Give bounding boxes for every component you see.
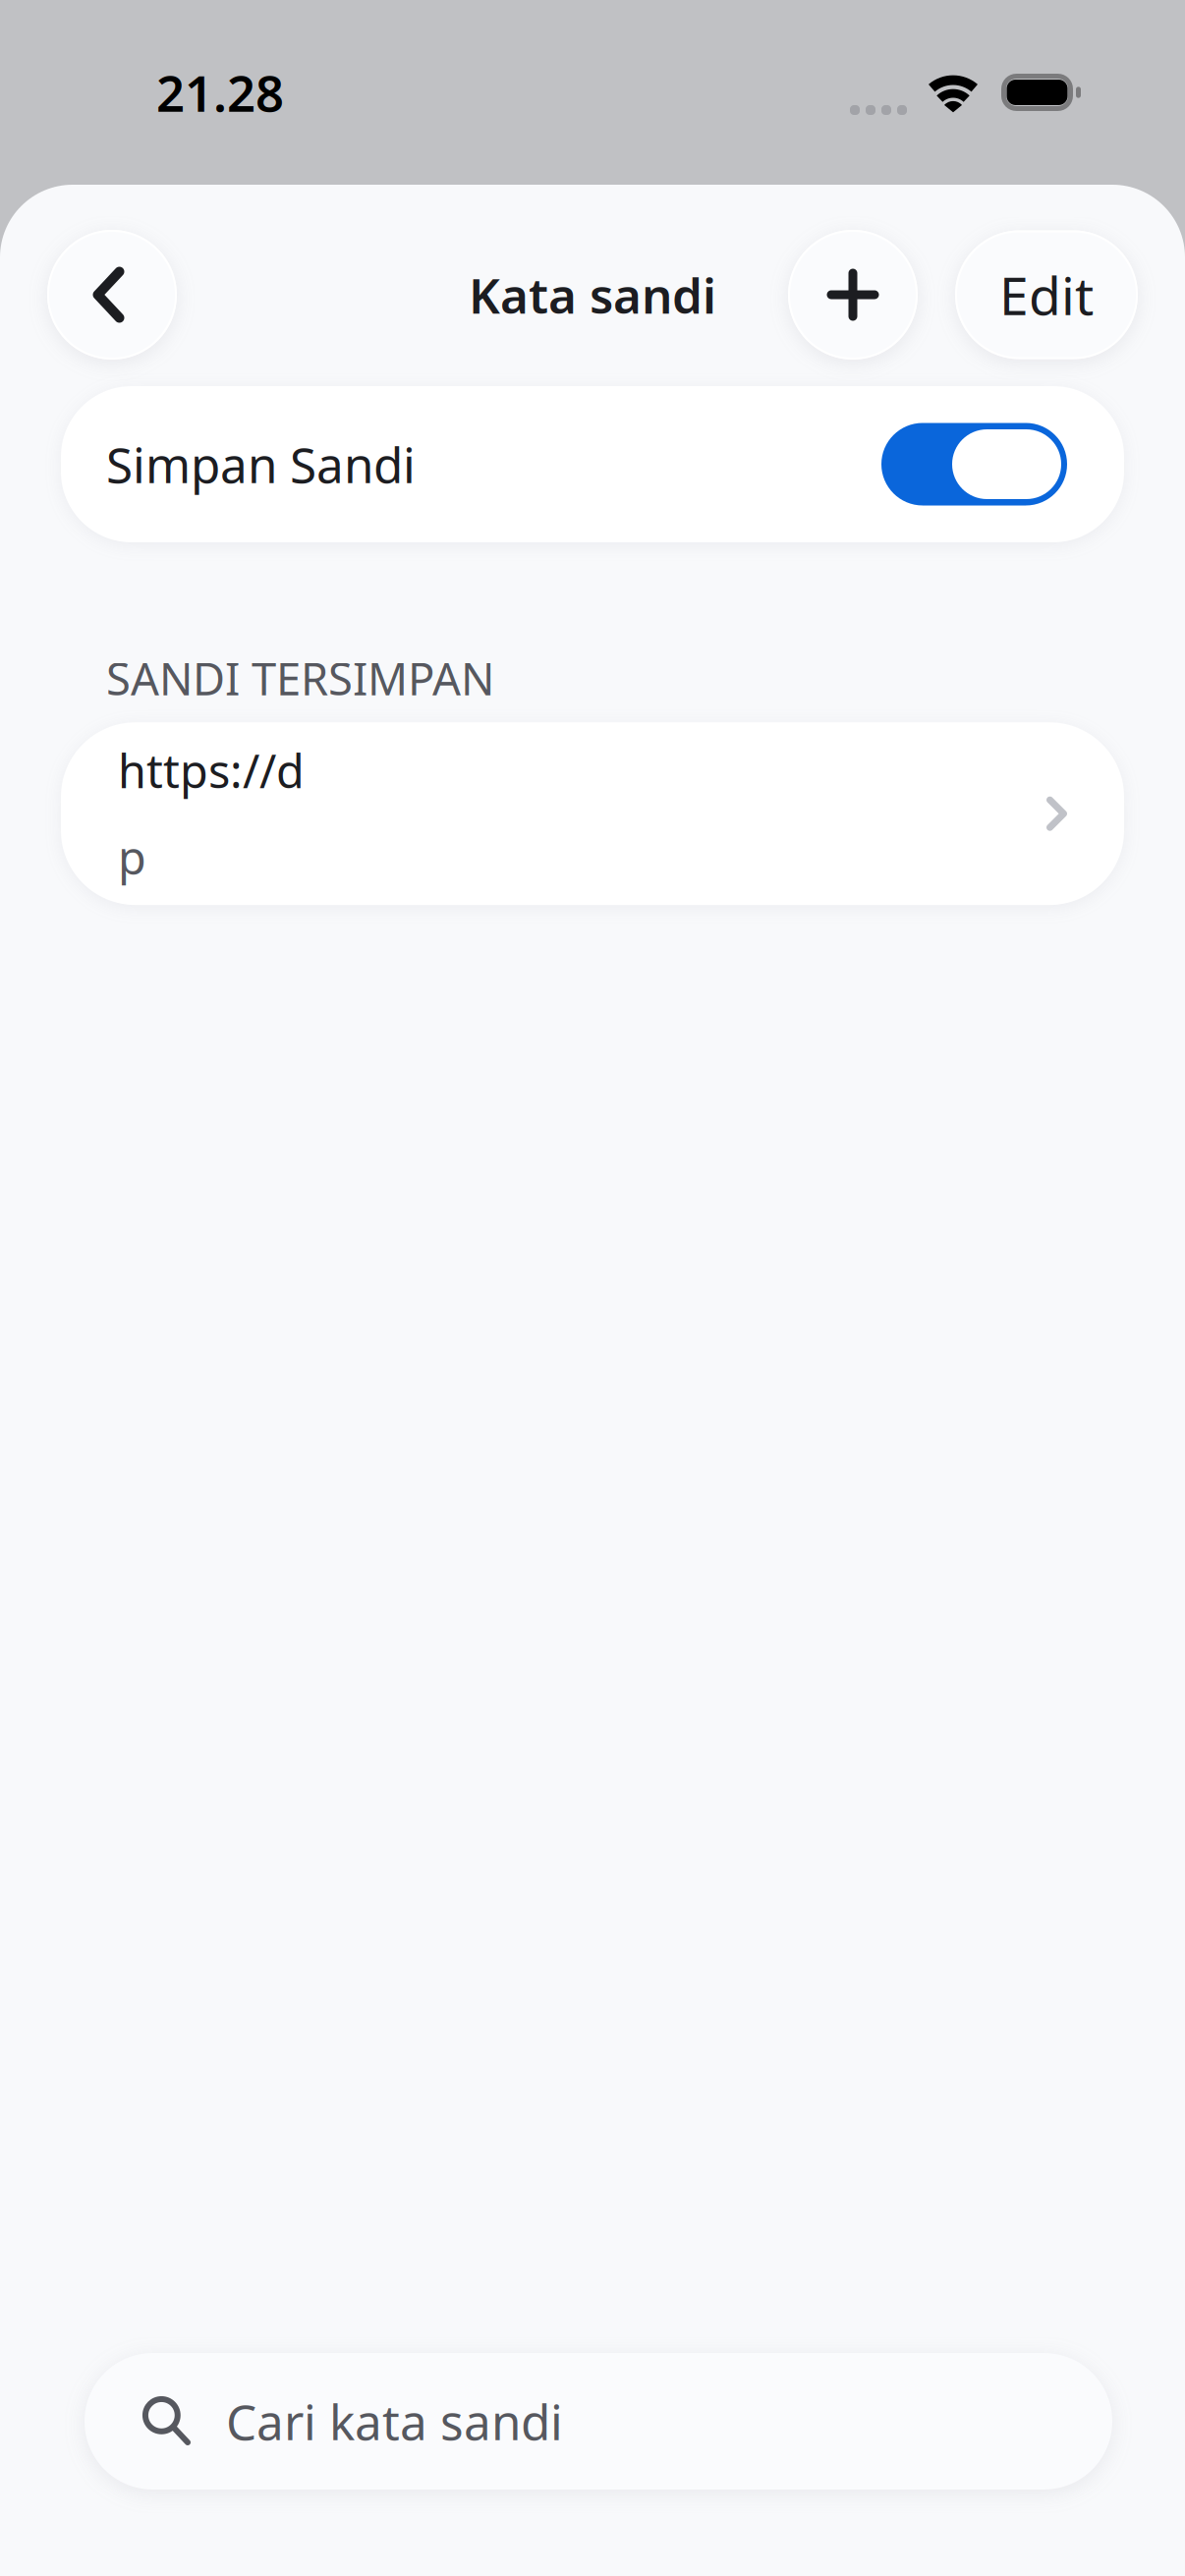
staticText: https://d	[118, 740, 305, 801]
staticText: 21.28	[156, 59, 284, 125]
staticText: SANDI TERSIMPAN	[106, 648, 494, 708]
staticText: Edit	[999, 260, 1094, 330]
button[interactable]: Simpan Sandi	[61, 386, 1124, 542]
staticText: p	[118, 826, 146, 887]
button[interactable]: https://d	[61, 722, 1124, 905]
button[interactable]: Edit	[955, 230, 1138, 359]
button[interactable]: Add password	[788, 230, 918, 360]
staticText: Simpan Sandi	[106, 432, 416, 496]
staticText: Kata sandi	[469, 263, 716, 327]
staticText: Cari kata sandi	[226, 2389, 563, 2453]
button[interactable]: Back	[47, 230, 177, 360]
